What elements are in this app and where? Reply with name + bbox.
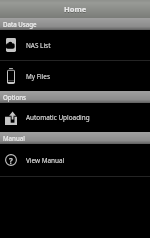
staticText: NAS List [26,41,51,50]
staticText: Home [64,5,87,15]
button[interactable]: ? [0,144,150,176]
button[interactable]: NAS List [0,30,150,60]
button[interactable]: Automatic Uploading [0,103,150,132]
staticText: Automatic Uploading [26,113,90,122]
staticText: Options [3,93,26,101]
staticText: My Files [26,72,50,81]
staticText: Data Usage [3,20,37,28]
staticText: View Manual [26,156,65,165]
staticText: Home [64,4,87,14]
button[interactable]: My Files [0,61,150,91]
staticText: Manual [3,134,25,142]
staticText: ? [9,155,13,166]
